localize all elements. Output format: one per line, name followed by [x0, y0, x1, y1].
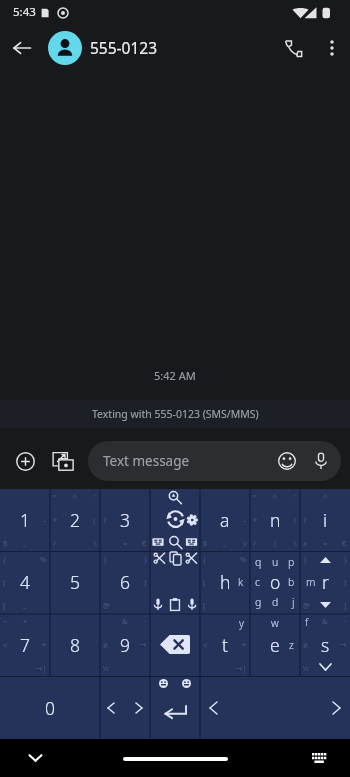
button[interactable]: Cut copy paste: [150, 551, 200, 613]
staticText: }: [344, 554, 347, 564]
button[interactable]: ": [250, 489, 300, 551]
button[interactable]: {: [200, 551, 250, 613]
staticText: 5: [70, 570, 80, 594]
staticText: t: [222, 633, 228, 657]
button[interactable]: q: [250, 551, 300, 613]
button[interactable]: Camera: [44, 442, 82, 480]
button[interactable]: -: [200, 489, 250, 551]
staticText: b: [288, 575, 295, 589]
staticText: ·: [144, 616, 147, 626]
staticText: -: [44, 515, 47, 525]
staticText: *: [53, 515, 58, 525]
staticText: _: [23, 600, 27, 610]
staticText: _: [223, 538, 227, 548]
staticText: <: [3, 640, 8, 650]
button[interactable]: Backspace: [150, 613, 200, 676]
staticText: ?: [303, 515, 307, 525]
button[interactable]: Voice input: [304, 444, 338, 478]
button[interactable]: {: [0, 551, 50, 613]
button[interactable]: Cursor left right: [100, 676, 150, 739]
staticText: +: [23, 616, 28, 626]
button[interactable]: -: [0, 489, 50, 551]
button[interactable]: ~: [0, 613, 50, 676]
button[interactable]: |: [100, 551, 150, 613]
button[interactable]: 8: [50, 613, 100, 676]
button[interactable]: &: [300, 613, 350, 676]
staticText: 2: [70, 508, 80, 532]
staticText: m: [306, 575, 316, 589]
staticText: →: [340, 640, 347, 649]
button[interactable]: Hide keyboard: [22, 745, 48, 771]
button[interactable]: 0: [0, 676, 100, 739]
staticText: #: [303, 640, 308, 650]
button[interactable]: &: [100, 613, 150, 676]
staticText: a: [220, 508, 230, 532]
button[interactable]: Enter: [150, 676, 200, 739]
staticText: ^: [73, 492, 78, 502]
button[interactable]: Attach: [6, 442, 44, 480]
button[interactable]: <: [200, 613, 250, 676]
staticText: _: [23, 538, 27, 548]
staticText: \\: [303, 663, 309, 673]
staticText: z: [289, 638, 294, 652]
staticText: n: [270, 508, 281, 532]
staticText: -: [244, 515, 247, 525]
staticText: →|: [36, 663, 47, 673]
staticText: !: [294, 515, 297, 525]
staticText: ): [144, 577, 147, 587]
staticText: |: [103, 554, 108, 564]
staticText: ]: [344, 600, 347, 610]
staticText: =: [123, 538, 128, 548]
staticText: %: [40, 554, 47, 564]
staticText: 555-0123: [90, 37, 158, 58]
staticText: {: [3, 554, 6, 564]
staticText: ^: [323, 492, 328, 502]
button[interactable]: Search and settings: [150, 489, 200, 551]
staticText: &: [122, 616, 128, 626]
button[interactable]: Call: [272, 27, 314, 69]
staticText: k: [238, 575, 244, 589]
button[interactable]: |: [300, 551, 350, 613]
staticText: =: [323, 538, 328, 548]
staticText: %: [240, 554, 247, 564]
staticText: e: [270, 633, 280, 657]
staticText: x: [303, 538, 307, 548]
button[interactable]: More options: [314, 30, 350, 66]
staticText: →|: [236, 663, 247, 673]
staticText: 1: [20, 508, 30, 532]
staticText: <: [203, 640, 208, 650]
staticText: €: [142, 538, 147, 548]
staticText: €: [342, 538, 347, 548]
staticText: |: [273, 538, 278, 548]
staticText: &: [322, 616, 328, 626]
staticText: ^: [273, 492, 278, 502]
staticText: r: [322, 570, 329, 594]
button[interactable]: ^: [300, 489, 350, 551]
button[interactable]: z: [250, 613, 300, 676]
button[interactable]: Text message: [88, 441, 341, 481]
staticText: ': [295, 492, 297, 502]
staticText: 8: [70, 633, 80, 657]
button[interactable]: Space: [200, 676, 350, 739]
staticText: {: [203, 554, 206, 564]
staticText: *: [42, 640, 47, 650]
staticText: }: [144, 554, 147, 564]
staticText: ~: [3, 616, 8, 626]
button[interactable]: Switch keyboard: [306, 745, 332, 771]
staticText: 7: [20, 633, 30, 657]
button[interactable]: ": [50, 489, 100, 551]
button[interactable]: 555-0123: [48, 25, 272, 70]
button[interactable]: ?: [100, 489, 150, 551]
staticText: h: [220, 570, 231, 594]
button[interactable]: Emoji: [270, 444, 304, 478]
button[interactable]: Back: [0, 26, 44, 70]
staticText: 6: [120, 570, 130, 594]
staticText: u: [272, 555, 279, 569]
staticText: ): [344, 577, 347, 587]
staticText: 0: [45, 696, 55, 720]
staticText: s: [321, 633, 330, 657]
staticText: f: [305, 615, 309, 629]
staticText: →: [140, 640, 147, 649]
staticText: 4: [20, 570, 30, 594]
button[interactable]: 5: [50, 551, 100, 613]
